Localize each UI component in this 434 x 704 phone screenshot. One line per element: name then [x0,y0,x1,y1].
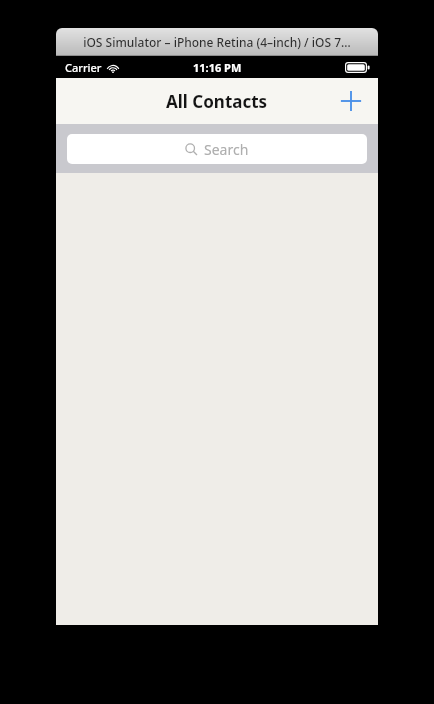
staticText: All Contacts [166,90,268,113]
button[interactable]: Search [67,134,367,164]
staticText: Search [204,140,249,159]
staticText: iOS Simulator – iPhone Retina (4–inch) /… [83,34,351,50]
button[interactable]: Add contact [332,82,370,120]
staticText: 11:16 PM [193,60,242,75]
staticText: Carrier [65,60,102,75]
